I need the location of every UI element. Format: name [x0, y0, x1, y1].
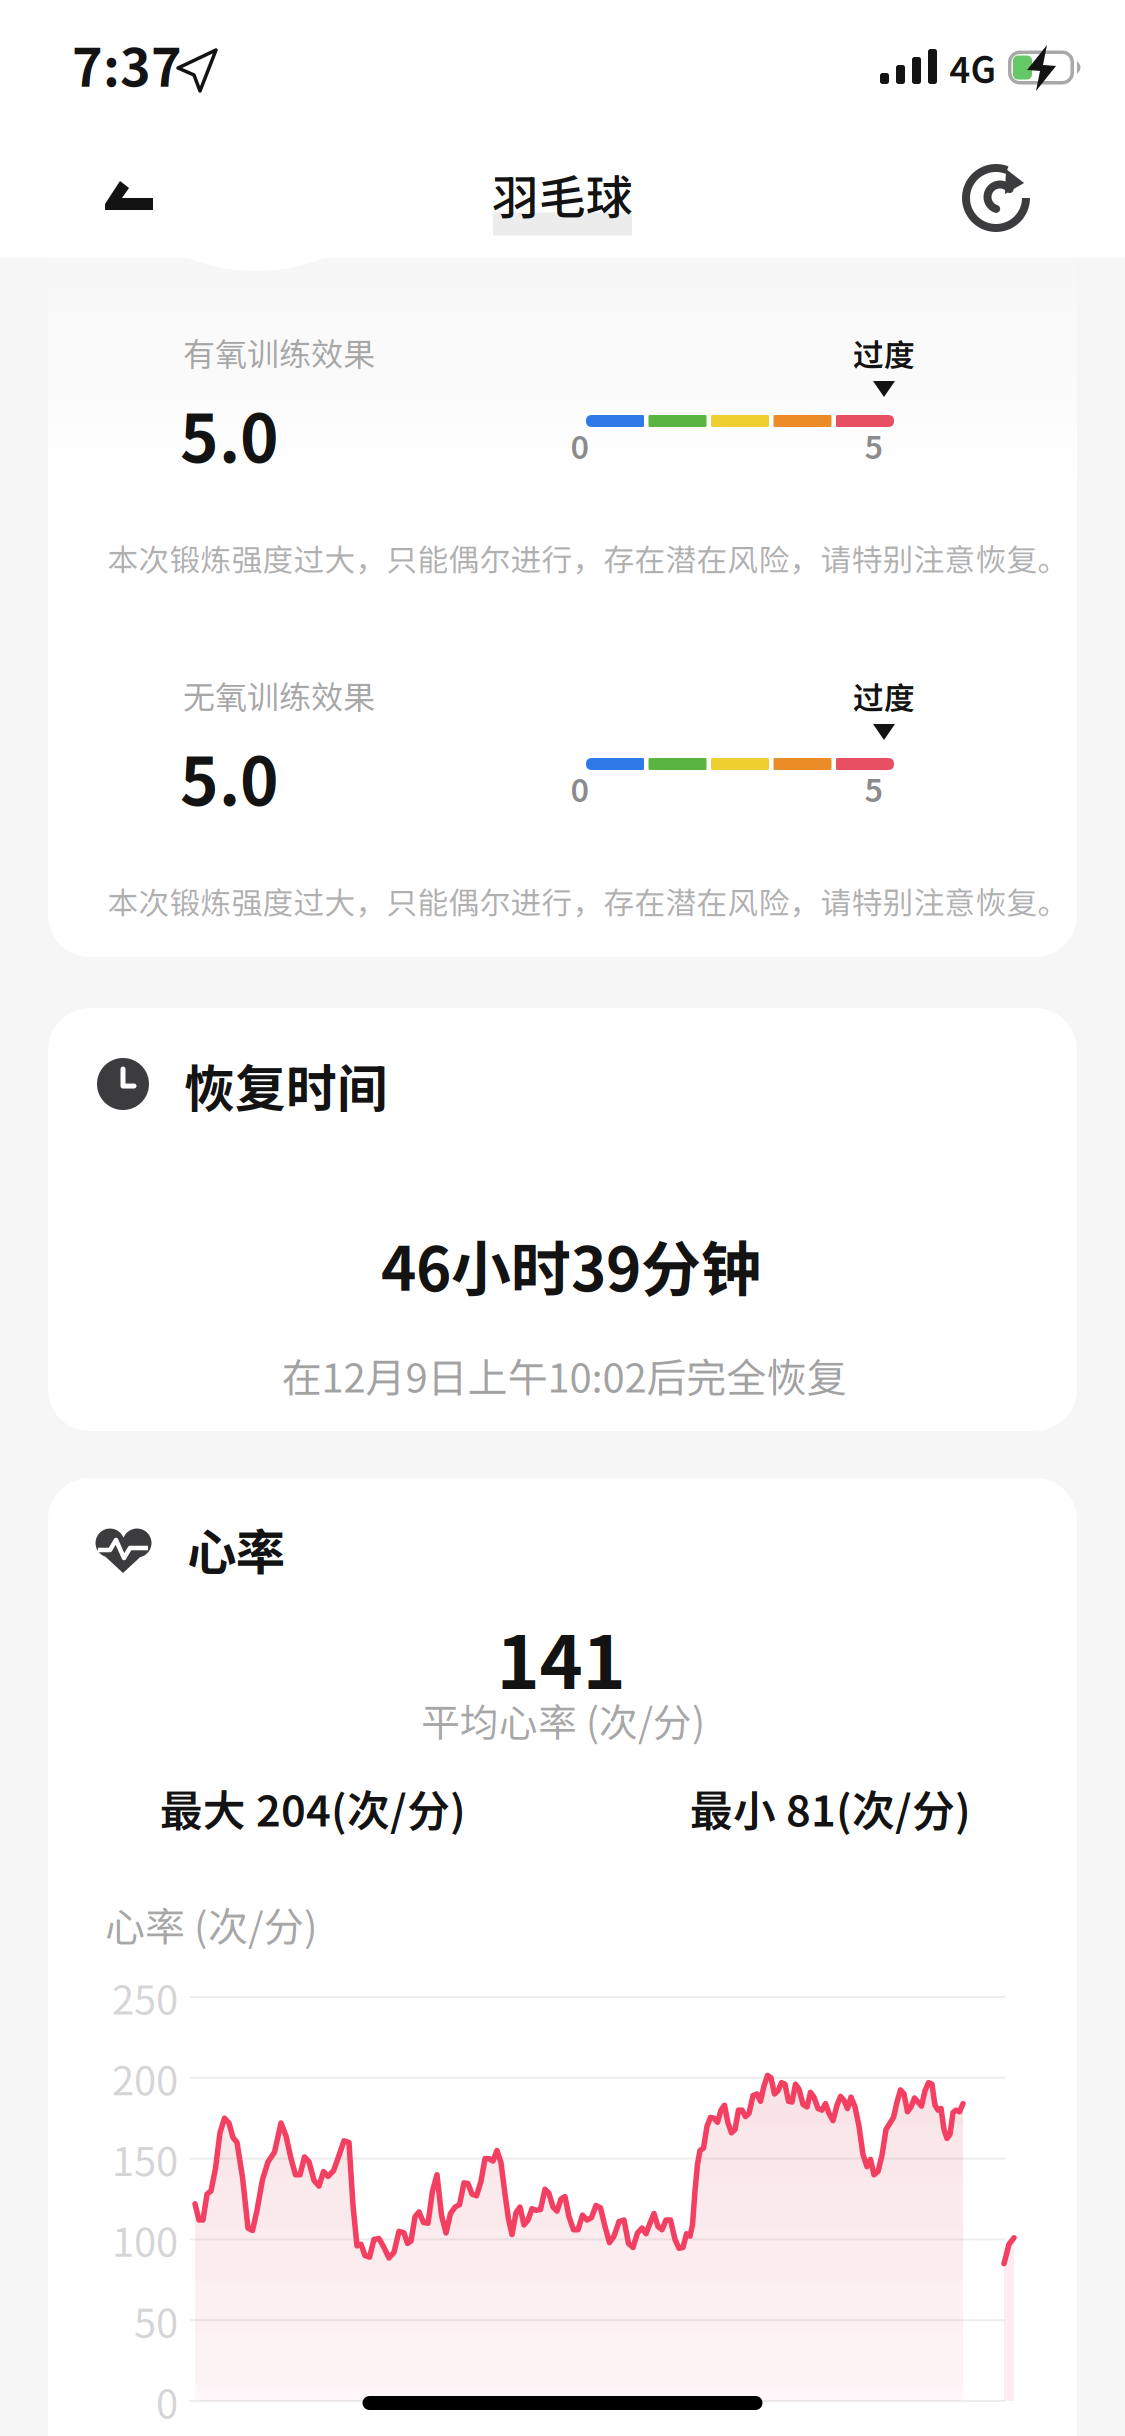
staticText: 50: [134, 2292, 178, 2348]
staticText: 有氧训练效果: [183, 329, 375, 375]
button[interactable]: Refresh: [954, 156, 1038, 240]
staticText: 在12月9日上午10:02后完全恢复: [281, 1347, 846, 1403]
button[interactable]: Back: [78, 157, 178, 237]
staticText: 恢复时间: [184, 1049, 388, 1121]
staticText: 150: [112, 2130, 178, 2187]
staticText: 4G: [949, 42, 996, 92]
staticText: 0: [570, 765, 589, 811]
staticText: 最小 81(次/分): [690, 1778, 971, 1838]
staticText: 7:37: [72, 27, 182, 101]
staticText: 最大 204(次/分): [160, 1778, 466, 1838]
staticText: 5.0: [180, 388, 279, 480]
staticText: 200: [112, 2050, 178, 2106]
staticText: 本次锻炼强度过大，只能偶尔进行，存在潜在风险，请特别注意恢复。: [107, 879, 1068, 923]
staticText: 羽毛球: [492, 161, 633, 227]
staticText: 141: [496, 1605, 625, 1709]
staticText: 过度: [853, 331, 915, 375]
staticText: 250: [112, 1969, 178, 2025]
staticText: 100: [112, 2211, 178, 2268]
staticText: 5: [864, 422, 883, 468]
staticText: 过度: [853, 674, 915, 718]
staticText: 5: [864, 765, 883, 811]
staticText: 心率 (次/分): [105, 1896, 318, 1952]
staticText: 本次锻炼强度过大，只能偶尔进行，存在潜在风险，请特别注意恢复。: [107, 536, 1068, 580]
staticText: 46小时39分钟: [381, 1223, 761, 1307]
staticText: 心率: [187, 1514, 285, 1584]
staticText: 平均心率 (次/分): [421, 1693, 705, 1747]
staticText: 无氧训练效果: [183, 672, 375, 718]
staticText: 0: [570, 422, 589, 468]
staticText: 0: [156, 2373, 178, 2429]
staticText: 5.0: [180, 731, 279, 823]
